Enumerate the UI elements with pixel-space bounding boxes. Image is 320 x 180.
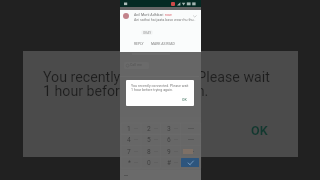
- staticText: 2: [147, 125, 151, 133]
- button[interactable]: 7: [121, 146, 141, 157]
- button[interactable]: 8: [141, 146, 161, 157]
- button[interactable]: 5: [141, 134, 161, 145]
- staticText: 0: [147, 159, 151, 167]
- button[interactable]: Hide keyboard: [121, 171, 131, 179]
- staticText: REPLY: [134, 42, 144, 46]
- staticText: 3: [167, 125, 171, 133]
- staticText: Call me: [130, 63, 142, 67]
- staticText: *: [128, 159, 131, 167]
- button[interactable]: 3: [161, 123, 181, 134]
- button[interactable]: Call me: [124, 62, 149, 69]
- staticText: now: [165, 13, 172, 17]
- staticText: Anil Murti Adhikari ·: [134, 13, 167, 17]
- staticText: 5: [147, 136, 151, 144]
- button[interactable]: 9: [161, 146, 181, 157]
- button[interactable]: REPLY: [134, 41, 148, 47]
- staticText: 7: [127, 148, 131, 156]
- button[interactable]: 6: [161, 134, 181, 145]
- staticText: OK: [251, 123, 268, 138]
- staticText: OK: [182, 98, 187, 102]
- button[interactable]: OK: [240, 120, 278, 140]
- button[interactable]: Enter: [181, 158, 199, 167]
- button[interactable]: 1: [121, 123, 141, 134]
- button[interactable]: 0: [141, 157, 161, 168]
- button[interactable]: Expand notification: [191, 12, 199, 19]
- button[interactable]: Anil Murti Adhikari ·: [120, 10, 201, 52]
- staticText: Aei sathai hai jaata.baso wow rhu thu..: [134, 18, 196, 22]
- staticText: You recently connected. Please wait 1 ho…: [131, 84, 189, 92]
- staticText: 1: [127, 125, 131, 133]
- staticText: MARK AS READ: [151, 42, 175, 46]
- staticText: You recently connected. Please wait 1 ho…: [43, 69, 270, 100]
- staticText: OKAY: [143, 31, 152, 35]
- button[interactable]: OKAY: [141, 30, 153, 35]
- button[interactable]: MARK AS READ: [151, 41, 176, 47]
- staticText: 8: [147, 148, 151, 156]
- staticText: #: [167, 159, 172, 167]
- button[interactable]: Symbol key: [181, 146, 201, 157]
- button[interactable]: *: [121, 157, 141, 168]
- button[interactable]: #: [161, 157, 181, 168]
- staticText: 9: [167, 148, 171, 156]
- button[interactable]: 4: [121, 134, 141, 145]
- button[interactable]: OK: [178, 96, 190, 103]
- staticText: 6: [167, 136, 171, 144]
- staticText: 4: [127, 136, 131, 144]
- button[interactable]: 2: [141, 123, 161, 134]
